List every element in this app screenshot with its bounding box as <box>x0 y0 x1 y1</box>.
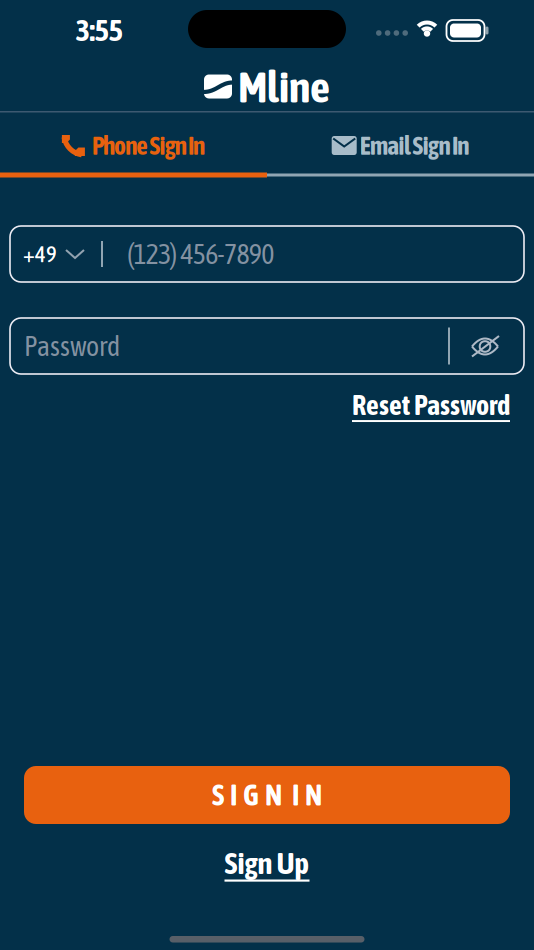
staticText: Phone Sign In <box>92 131 205 160</box>
staticText: (123) 456-7890 <box>127 238 274 270</box>
button[interactable]: Show password <box>471 334 499 358</box>
button[interactable]: Email Sign In <box>267 112 534 172</box>
staticText: Sign Up <box>224 846 309 880</box>
staticText: Email Sign In <box>360 131 469 160</box>
staticText: Reset Password <box>352 389 510 421</box>
staticText: 3:55 <box>75 13 122 47</box>
button[interactable]: Choose country code <box>65 249 85 259</box>
staticText: Password <box>24 330 120 362</box>
button[interactable]: S I G N I N <box>24 766 510 824</box>
button[interactable]: Reset Password <box>352 389 510 421</box>
staticText: S I G N I N <box>212 779 322 811</box>
staticText: +49 <box>23 241 57 267</box>
button[interactable]: Sign Up <box>224 846 309 880</box>
button[interactable]: Phone Sign In <box>0 112 267 172</box>
staticText: Mline <box>238 62 330 111</box>
